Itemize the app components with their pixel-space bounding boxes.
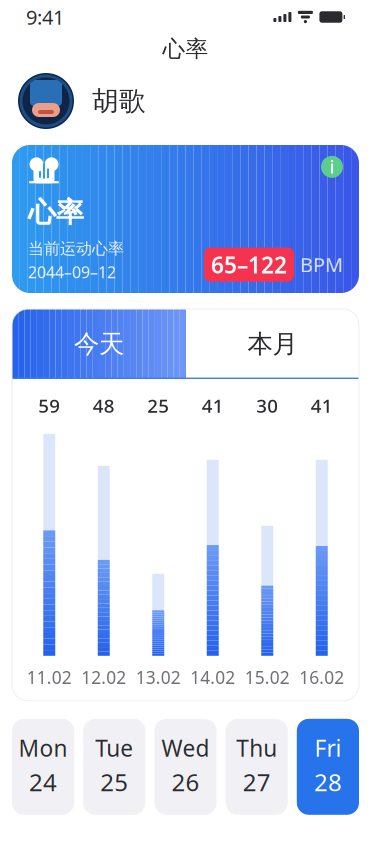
staticText: Wed bbox=[161, 733, 209, 763]
staticText: 41 bbox=[202, 393, 224, 418]
staticText: 27 bbox=[243, 766, 271, 798]
staticText: 65–122 bbox=[211, 249, 287, 280]
staticText: Mon bbox=[19, 733, 68, 763]
staticText: 本月 bbox=[247, 328, 297, 359]
staticText: 胡歌 bbox=[92, 85, 146, 117]
staticText: 48 bbox=[93, 393, 115, 418]
staticText: 24 bbox=[29, 766, 57, 798]
staticText: Tue bbox=[95, 733, 133, 763]
staticText: 16.02 bbox=[299, 666, 344, 689]
staticText: 25 bbox=[147, 393, 169, 418]
button[interactable]: Mon bbox=[12, 719, 74, 815]
staticText: 13.02 bbox=[136, 666, 181, 689]
staticText: 今天 bbox=[74, 328, 124, 359]
staticText: 9:41 bbox=[26, 4, 64, 30]
staticText: 59 bbox=[38, 393, 60, 418]
button[interactable]: 胡歌 bbox=[0, 64, 371, 135]
staticText: BPM bbox=[300, 251, 343, 278]
button[interactable]: Information bbox=[321, 155, 343, 178]
staticText: 41 bbox=[311, 393, 333, 418]
staticText: 11.02 bbox=[27, 666, 72, 689]
staticText: 15.02 bbox=[245, 666, 290, 689]
staticText: 25 bbox=[100, 766, 128, 798]
staticText: Thu bbox=[236, 733, 277, 763]
button[interactable]: Wed bbox=[154, 719, 217, 815]
staticText: 26 bbox=[171, 766, 199, 798]
staticText: 14.02 bbox=[190, 666, 235, 689]
button[interactable]: 本月 bbox=[186, 309, 359, 379]
staticText: 当前运动心率 bbox=[28, 239, 124, 258]
staticText: 28 bbox=[314, 766, 342, 798]
staticText: 心率 bbox=[28, 195, 84, 230]
button[interactable]: Tue bbox=[83, 719, 145, 815]
staticText: 30 bbox=[256, 393, 278, 418]
staticText: 12.02 bbox=[81, 666, 126, 689]
staticText: i bbox=[329, 155, 334, 178]
button[interactable]: 今天 bbox=[12, 309, 186, 379]
button[interactable]: Thu bbox=[226, 719, 288, 815]
staticText: Fri bbox=[314, 733, 341, 763]
button[interactable]: Fri bbox=[297, 719, 359, 815]
staticText: 2044–09–12 bbox=[28, 261, 116, 283]
staticText: 心率 bbox=[162, 35, 208, 63]
